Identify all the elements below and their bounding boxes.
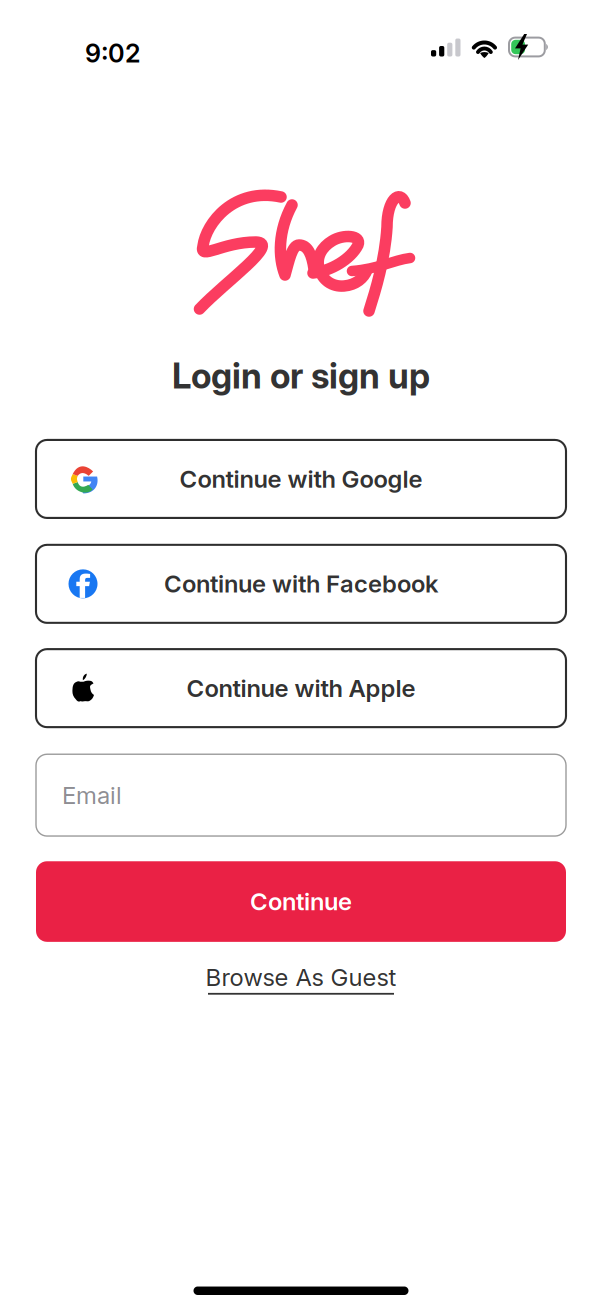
- staticText: Continue with Google: [179, 464, 422, 493]
- staticText: Login or sign up: [172, 355, 430, 397]
- button[interactable]: Email: [36, 754, 566, 836]
- button[interactable]: Continue with Facebook: [36, 545, 566, 623]
- staticText: Continue with Apple: [186, 674, 415, 703]
- staticText: Continue: [250, 887, 352, 916]
- staticText: Browse As Guest: [205, 963, 396, 992]
- button[interactable]: Continue with Google: [36, 440, 566, 518]
- staticText: Email: [62, 781, 122, 810]
- staticText: Continue with Facebook: [164, 569, 438, 598]
- staticText: 9:02: [85, 38, 141, 69]
- button[interactable]: Browse As Guest: [205, 963, 396, 995]
- button[interactable]: Continue with Apple: [36, 649, 566, 727]
- button[interactable]: Continue: [36, 861, 566, 942]
